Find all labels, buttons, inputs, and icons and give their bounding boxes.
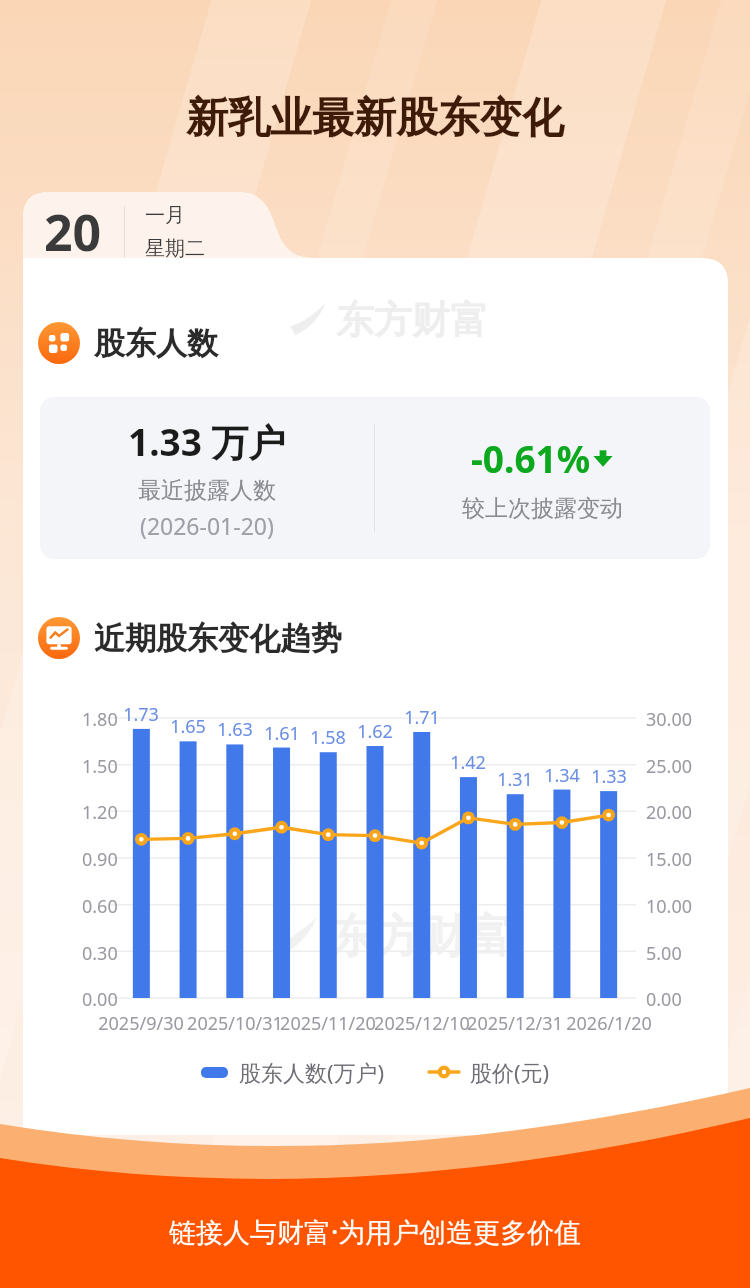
staticText: 0.00 (646, 987, 682, 1012)
staticText: 1.50 (82, 754, 118, 779)
staticText: 10.00 (646, 894, 693, 919)
staticText: 1.31 (497, 767, 533, 792)
staticText: 2025/12/31 (467, 1011, 563, 1036)
staticText: 1.58 (310, 725, 346, 750)
staticText: 链接人与财富·为用户创造更多价值 (169, 1213, 582, 1250)
staticText: 30.00 (646, 707, 693, 732)
button[interactable]: 股东人数(万户) (197, 1053, 389, 1091)
staticText: 20 (44, 198, 102, 266)
staticText: 东方财富 (330, 908, 513, 965)
staticText: 2025/9/30 (98, 1011, 184, 1036)
staticText: 股东人数(万户) (239, 1057, 385, 1087)
staticText: 1.61 (264, 721, 300, 746)
staticText: 股东人数 (94, 324, 218, 363)
other: 近期股东变化趋势 (38, 617, 80, 659)
staticText: 股价(元) (470, 1057, 550, 1087)
staticText: 最近披露人数 (138, 476, 276, 505)
staticText: 20.00 (646, 800, 693, 825)
button[interactable]: 近期股东变化趋势 (34, 613, 346, 663)
staticText: 星期二 (145, 236, 205, 261)
staticText: 0.00 (82, 987, 118, 1012)
staticText: 新乳业最新股东变化 (186, 92, 564, 145)
staticText: 1.33 万户 (128, 416, 286, 467)
staticText: 0.90 (82, 847, 118, 872)
staticText: 2025/11/20 (280, 1011, 376, 1036)
staticText: (2026-01-20) (140, 510, 274, 541)
other: 股东人数 (38, 322, 80, 364)
staticText: 2025/10/31 (187, 1011, 283, 1036)
staticText: 1.80 (82, 707, 118, 732)
staticText: 15.00 (646, 847, 693, 872)
staticText: 较上次披露变动 (462, 494, 623, 523)
staticText: 2026/1/20 (566, 1011, 652, 1036)
staticText: 25.00 (646, 754, 693, 779)
staticText: 东方财富 (336, 296, 488, 344)
staticText: 1.62 (357, 719, 393, 744)
button[interactable]: 1.33 万户 (40, 397, 710, 559)
staticText: 1.42 (450, 750, 486, 775)
staticText: 1.34 (544, 763, 580, 788)
staticText: 2025/12/10 (374, 1011, 470, 1036)
button[interactable]: 股价(元) (425, 1053, 554, 1091)
staticText: 1.65 (170, 714, 206, 739)
staticText: 1.63 (217, 717, 253, 742)
staticText: -0.61% (471, 433, 591, 483)
staticText: 一月 (145, 203, 185, 228)
staticText: 5.00 (646, 941, 682, 966)
button[interactable]: 股东人数 (34, 318, 222, 368)
staticText: 近期股东变化趋势 (94, 619, 342, 658)
staticText: 0.60 (82, 894, 118, 919)
staticText: 1.20 (82, 800, 118, 825)
staticText: 1.71 (404, 705, 440, 730)
staticText: 1.73 (123, 702, 159, 727)
staticText: 0.30 (82, 941, 118, 966)
staticText: 1.33 (591, 764, 627, 789)
